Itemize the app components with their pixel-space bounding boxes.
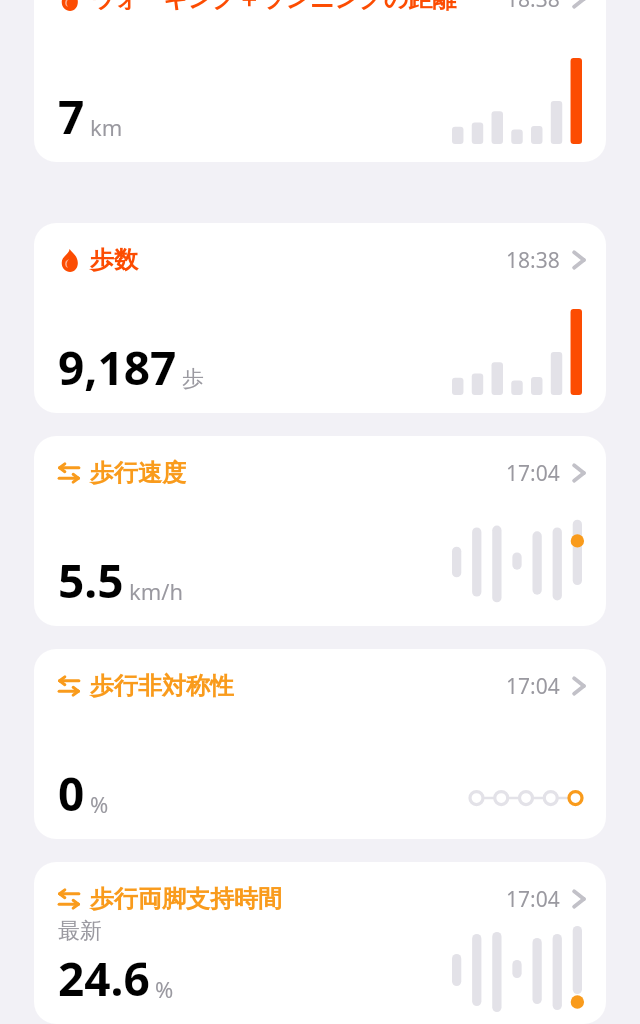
other: 詳細を表示 [572, 461, 586, 485]
staticText: 歩 [182, 365, 204, 393]
staticText: 0 [58, 762, 85, 825]
staticText: % [155, 974, 174, 1004]
staticText: 5.5 [58, 549, 124, 612]
staticText: % [90, 789, 109, 819]
other: 詳細を表示 [572, 887, 586, 911]
staticText: 歩行速度 [90, 458, 186, 488]
staticText: 17:04 [506, 885, 560, 914]
staticText: 歩数 [90, 245, 138, 275]
other: 詳細を表示 [572, 0, 586, 11]
other: 詳細を表示 [572, 248, 586, 272]
staticText: ウォーキング＋ランニングの距離 [90, 0, 457, 14]
button[interactable]: 歩行両脚支持時間 [34, 862, 606, 1024]
other: 詳細を表示 [572, 674, 586, 698]
staticText: km/h [129, 576, 184, 606]
staticText: 9,187 [58, 336, 177, 399]
staticText: km [90, 112, 123, 142]
staticText: 7 [58, 85, 85, 148]
staticText: 17:04 [506, 459, 560, 488]
button[interactable]: 歩行速度 [34, 436, 606, 626]
staticText: 最新 [58, 917, 102, 945]
staticText: 18:38 [506, 246, 560, 275]
staticText: 17:04 [506, 672, 560, 701]
staticText: 24.6 [58, 947, 150, 1010]
button[interactable]: 歩数 [34, 223, 606, 413]
button[interactable]: 歩行非対称性 [34, 649, 606, 839]
staticText: 18:38 [506, 0, 560, 14]
staticText: 歩行非対称性 [90, 671, 234, 701]
button[interactable]: ウォーキング＋ランニングの距離 [34, 0, 606, 162]
staticText: 歩行両脚支持時間 [90, 884, 282, 914]
